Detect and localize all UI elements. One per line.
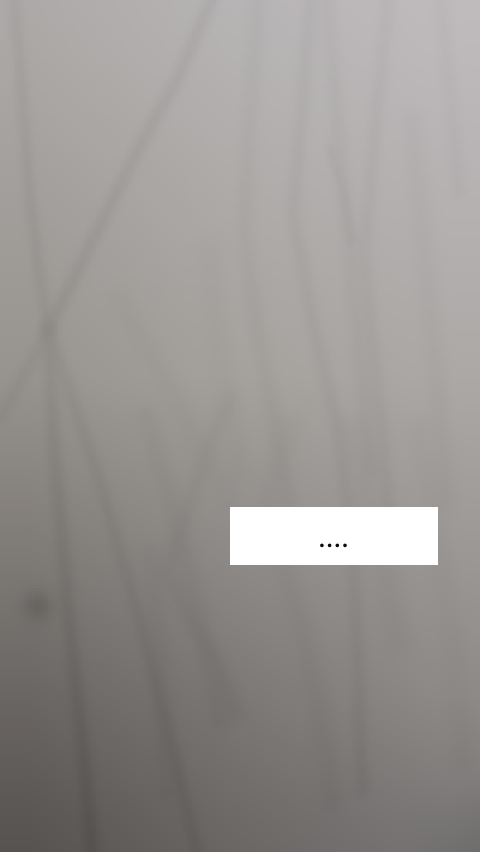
button[interactable]: Caption	[230, 507, 438, 565]
